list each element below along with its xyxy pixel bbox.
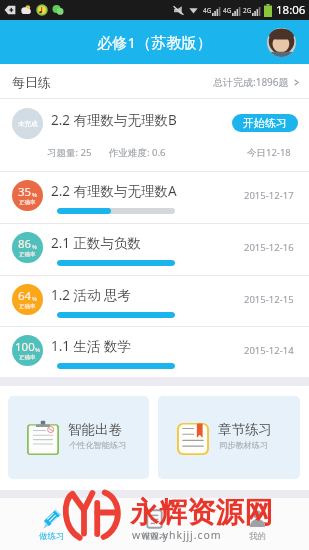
staticText: 作业难度: 0.6 [109, 146, 166, 159]
staticText: 正确率 [19, 199, 36, 206]
button[interactable]: 100 [0, 327, 309, 378]
staticText: 2015-12-16 [244, 241, 294, 254]
staticText: 64 [18, 288, 32, 304]
staticText: 2.1 正数与负数 [51, 234, 142, 252]
staticText: 今日12-18 [247, 146, 291, 159]
staticText: 正确率 [19, 303, 36, 310]
staticText: 2G [243, 6, 252, 15]
staticText: 必修1（苏教版） [97, 32, 212, 53]
button[interactable]: 章节练习 [158, 396, 300, 479]
button[interactable]: Profile [267, 28, 296, 57]
staticText: 同步教材练习 [219, 440, 269, 450]
button[interactable]: 做练习 [0, 498, 103, 550]
staticText: 总计完成:1896题 [213, 75, 289, 89]
staticText: 18:06 [276, 2, 306, 18]
staticText: 我的 [249, 531, 266, 542]
staticText: 错题本 [142, 531, 168, 542]
staticText: 永辉资源网 [130, 495, 273, 531]
staticText: www.yhkjjj.com [132, 528, 222, 542]
staticText: 1.2 活动 思考 [51, 286, 132, 304]
staticText: 4G [223, 6, 232, 15]
staticText: 2015-12-15 [244, 293, 294, 306]
button[interactable]: 智能出卷 [8, 396, 149, 479]
staticText: 86 [18, 236, 32, 252]
staticText: 开始练习 [243, 116, 287, 130]
staticText: 习题量: 25 [47, 146, 92, 159]
staticText: 100 [15, 339, 35, 355]
staticText: 2.2 有理数与无理数B [51, 111, 177, 129]
button[interactable]: 错题本 [103, 498, 206, 550]
button[interactable]: 35 [0, 172, 309, 224]
staticText: 每日练 [12, 74, 51, 90]
staticText: % [32, 191, 37, 199]
button[interactable]: 总计完成:1896题 [213, 75, 309, 89]
staticText: % [32, 243, 37, 251]
button[interactable]: 64 [0, 276, 309, 327]
staticText: 章节练习 [218, 421, 272, 438]
staticText: 2015-12-14 [244, 344, 294, 357]
button[interactable]: 未完成 [0, 99, 309, 172]
staticText: 智能出卷 [68, 421, 122, 438]
staticText: 2.2 有理数与无理数A [51, 182, 177, 200]
staticText: 正确率 [19, 354, 36, 361]
staticText: % [35, 346, 40, 354]
staticText: 2015-12-17 [244, 189, 294, 202]
staticText: % [32, 295, 37, 303]
staticText: 4G [203, 6, 212, 15]
staticText: 未完成 [18, 120, 38, 128]
staticText: 做练习 [39, 531, 65, 542]
button[interactable]: 86 [0, 224, 309, 276]
staticText: 35 [18, 184, 32, 200]
staticText: 1.1 生活 数学 [51, 337, 132, 355]
staticText: 正确率 [19, 251, 36, 258]
button[interactable]: 我的 [206, 498, 309, 550]
button[interactable]: 开始练习 [232, 114, 298, 132]
staticText: 个性化智能练习 [69, 440, 127, 450]
